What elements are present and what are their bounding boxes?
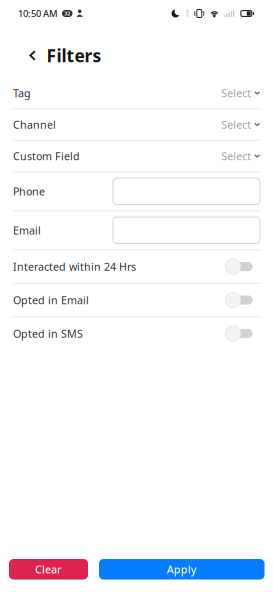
button[interactable]: Channel [0,109,273,140]
staticText: Apply [167,562,197,576]
button[interactable]: Opted in Email toggle [225,292,253,309]
staticText: Clear [35,562,62,576]
button[interactable]: Email input [112,217,260,244]
button[interactable]: Tag [0,78,273,108]
staticText: Email [13,223,41,237]
button[interactable]: Custom Field [0,141,273,171]
staticText: Channel [13,117,56,132]
button[interactable]: Clear [9,559,88,579]
staticText: Opted in Email [13,293,89,307]
staticText: Interacted within 24 Hrs [13,259,136,274]
staticText: Opted in SMS [13,326,83,341]
button[interactable]: Back [0,50,46,60]
staticText: Filters [46,44,101,67]
button[interactable]: Opted in SMS toggle [225,325,253,342]
button[interactable]: Phone input [112,178,260,205]
staticText: Select [221,149,251,163]
staticText: Tag [13,86,31,100]
staticText: 10:50 AM [18,7,58,20]
button[interactable]: Apply [99,559,264,579]
staticText: Select [221,86,251,100]
staticText: Custom Field [13,149,80,163]
staticText: 32 [64,10,70,17]
staticText: Select [221,117,251,132]
staticText: Phone [13,184,45,198]
button[interactable]: Interacted within 24 Hrs toggle [225,258,253,275]
